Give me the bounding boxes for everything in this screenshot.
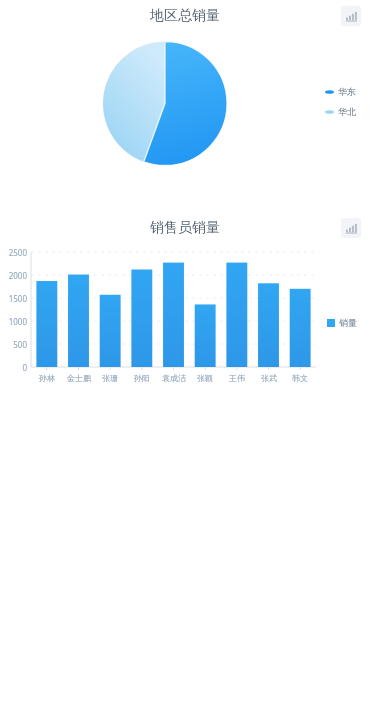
- button[interactable]: 华东: [325, 86, 356, 97]
- button[interactable]: Regional sales pie chart: [0, 0, 370, 190]
- staticText: 袁成洁: [162, 373, 186, 383]
- button[interactable]: Switch chart type: [341, 6, 361, 26]
- staticText: 韩文: [292, 373, 308, 383]
- staticText: 销售员销量: [150, 219, 220, 237]
- staticText: 张珊: [102, 373, 118, 383]
- staticText: 张颖: [197, 373, 213, 383]
- button[interactable]: Sales person bar chart: [0, 212, 370, 392]
- staticText: 华北: [338, 106, 356, 117]
- staticText: 2000: [8, 270, 27, 281]
- button[interactable]: 华北: [325, 106, 356, 117]
- staticText: 孙阳: [134, 373, 150, 383]
- staticText: 华东: [338, 86, 356, 97]
- button[interactable]: 销量: [327, 317, 357, 328]
- staticText: 1000: [8, 316, 27, 327]
- staticText: 500: [13, 339, 27, 350]
- staticText: 张武: [261, 373, 277, 383]
- staticText: 地区总销量: [150, 7, 220, 25]
- staticText: 孙林: [39, 373, 55, 383]
- staticText: 金士鹏: [67, 373, 91, 383]
- staticText: 2500: [8, 247, 27, 258]
- staticText: 销量: [339, 317, 357, 328]
- staticText: 0: [22, 362, 27, 373]
- staticText: 1500: [8, 293, 27, 304]
- button[interactable]: Switch chart type: [341, 218, 361, 238]
- staticText: 王伟: [229, 373, 245, 383]
